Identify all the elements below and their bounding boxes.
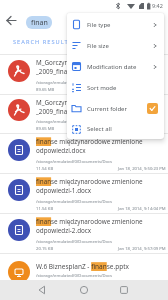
staticText: 11.54 KB <box>36 166 54 172</box>
button[interactable] <box>0 94 168 134</box>
staticText: M_Gorczynska_fin _2009_finanse.pdf <box>36 98 90 116</box>
button[interactable] <box>8 261 30 283</box>
button[interactable]: Modification date <box>67 56 164 77</box>
staticText: 11.54 KB <box>36 206 54 212</box>
staticText: Current folder <box>87 105 127 113</box>
button[interactable]: Sort mode <box>67 77 164 98</box>
staticText: finan <box>31 18 48 28</box>
button[interactable]: File size <box>67 35 164 56</box>
staticText: 89.65 MB <box>36 87 55 93</box>
staticText: finanse międzynarodowe zmienione odpowie… <box>36 177 143 195</box>
staticText: finanse międzynarodowe zmienione odpowie… <box>36 137 143 155</box>
staticText: /storage/emulated/0/Documents <box>36 119 101 125</box>
staticText: Modification date <box>87 63 137 71</box>
staticText: 20.15 KB <box>36 246 54 252</box>
staticText: W.6 BiznesplanZ - finanse.pptx <box>36 262 130 271</box>
staticText: /storage/emulated/0/Documents/Docs <box>36 199 113 205</box>
staticText: File type <box>87 21 111 29</box>
staticText: Sort mode <box>87 84 117 92</box>
staticText: /storage/emulated/0/Documents/Docs <box>36 239 113 245</box>
button[interactable] <box>0 213 168 253</box>
staticText: /storage/emulated/0/Documents <box>36 80 101 86</box>
staticText: SEARCH RESULTS <box>13 38 73 46</box>
button[interactable]: Current folder <box>67 98 164 119</box>
button[interactable] <box>119 285 129 295</box>
staticText: Jan 18, 2014, 9:57:09 PM <box>118 246 166 252</box>
button[interactable] <box>79 285 89 295</box>
staticText: /storage/emulated/0/Documents/Docs <box>36 273 113 279</box>
staticText: M_Gorczynska_fin _2009_finanse.pdf <box>36 58 90 76</box>
button[interactable]: finan <box>26 16 52 29</box>
button[interactable]: Select all <box>67 119 164 139</box>
staticText: Jan 18, 2014, 9:14:04 PM <box>118 206 166 212</box>
staticText: Jan 18, 2014, 9:50:23 PM <box>118 166 166 172</box>
staticText: 9:42 <box>152 2 163 9</box>
button[interactable] <box>0 133 168 173</box>
staticText: finanse międzynarodowe zmienione odpowie… <box>36 217 143 235</box>
staticText: Select all <box>87 125 112 133</box>
button[interactable] <box>37 285 47 295</box>
staticText: File size <box>87 42 109 50</box>
button[interactable] <box>0 54 168 94</box>
button[interactable] <box>0 173 168 213</box>
staticText: 89.65 MB <box>36 126 55 132</box>
button[interactable]: File type <box>67 14 164 35</box>
staticText: /storage/emulated/0/Documents/Docs <box>36 159 113 165</box>
button[interactable] <box>6 15 17 26</box>
